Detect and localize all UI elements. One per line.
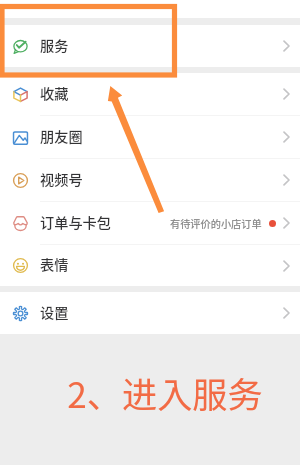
button[interactable]: 服务 — [0, 25, 300, 67]
button[interactable]: 朋友圈 — [0, 116, 300, 158]
staticText: 视频号 — [40, 169, 83, 190]
staticText: 有待评价的小店订单 — [170, 216, 262, 231]
button[interactable]: 设置 — [0, 292, 300, 334]
staticText: 订单与卡包 — [40, 212, 111, 233]
staticText: 设置 — [40, 302, 69, 323]
staticText: 朋友圈 — [40, 126, 83, 147]
button[interactable]: 收藏 — [0, 73, 300, 115]
button[interactable]: 订单与卡包 — [0, 202, 300, 244]
staticText: 2、进入服务 — [15, 367, 300, 418]
staticText: 服务 — [40, 35, 69, 56]
staticText: 收藏 — [40, 83, 69, 104]
button[interactable]: 表情 — [0, 245, 300, 286]
staticText: 表情 — [40, 254, 69, 275]
button[interactable]: 视频号 — [0, 159, 300, 201]
